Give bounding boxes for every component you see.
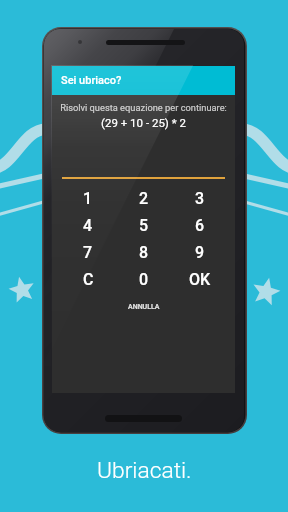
- button[interactable]: OK: [172, 266, 228, 293]
- button[interactable]: 0: [116, 266, 172, 293]
- staticText: 2: [139, 189, 149, 208]
- staticText: 6: [195, 216, 205, 235]
- staticText: C: [83, 270, 94, 289]
- staticText: Risolvi questa equazione per continuare:: [60, 102, 227, 113]
- button[interactable]: 6: [172, 212, 228, 239]
- button[interactable]: Sei ubriaco?: [52, 66, 235, 95]
- staticText: 4: [83, 216, 93, 235]
- button[interactable]: 2: [116, 185, 172, 212]
- staticText: 9: [195, 243, 205, 262]
- button[interactable]: 9: [172, 239, 228, 266]
- button[interactable]: 1: [60, 185, 116, 212]
- staticText: 8: [139, 243, 149, 262]
- staticText: Ubriacati.: [97, 457, 192, 484]
- staticText: 3: [195, 189, 205, 208]
- staticText: (29 + 10 - 25) * 2: [101, 116, 186, 129]
- button[interactable]: 5: [116, 212, 172, 239]
- button[interactable]: C: [60, 266, 116, 293]
- button[interactable]: 8: [116, 239, 172, 266]
- staticText: 0: [139, 270, 149, 289]
- staticText: 7: [83, 243, 93, 262]
- button[interactable]: 3: [172, 185, 228, 212]
- staticText: OK: [189, 270, 211, 289]
- staticText: 1: [83, 189, 93, 208]
- staticText: Sei ubriaco?: [61, 74, 122, 87]
- staticText: ANNULLA: [128, 303, 160, 311]
- button[interactable]: ANNULLA: [118, 299, 170, 315]
- button[interactable]: 7: [60, 239, 116, 266]
- button[interactable]: 4: [60, 212, 116, 239]
- staticText: 5: [139, 216, 149, 235]
